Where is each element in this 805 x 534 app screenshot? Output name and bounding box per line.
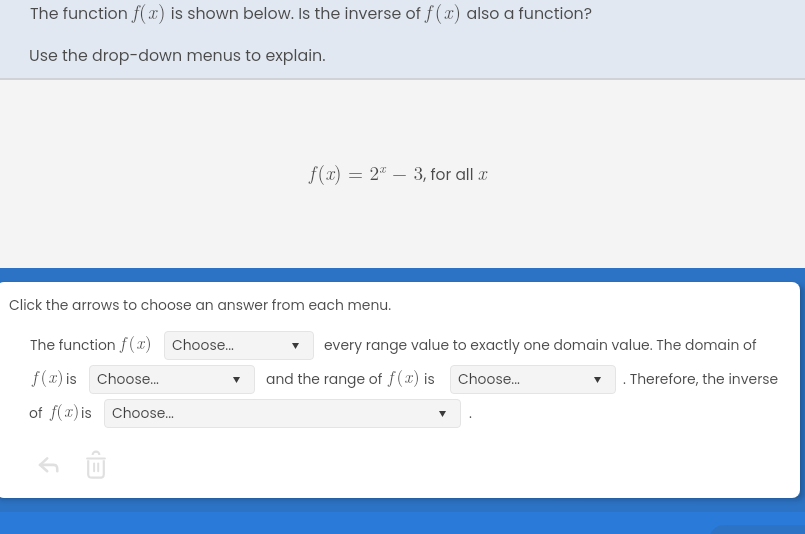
staticText: f(x): [50, 398, 81, 422]
staticText: Choose...: [172, 335, 235, 354]
staticText: is: [81, 403, 92, 422]
staticText: f (x) = 2x − 3, for all x: [309, 158, 487, 186]
staticText: is: [424, 369, 435, 388]
staticText: .: [469, 403, 472, 422]
staticText: Choose...: [112, 403, 175, 422]
staticText: Choose...: [458, 369, 521, 388]
staticText: Choose...: [97, 369, 160, 388]
staticText: is: [66, 369, 77, 388]
staticText: Use the drop-down menus to explain.: [29, 44, 326, 66]
staticText: The function: [30, 335, 116, 354]
staticText: f (x): [32, 364, 65, 388]
button[interactable]: Undo: [32, 450, 66, 480]
button[interactable]: Choose...: [89, 365, 255, 394]
staticText: of: [29, 403, 43, 422]
button[interactable]: Choose...: [164, 331, 314, 360]
button[interactable]: Choose...: [450, 365, 616, 394]
staticText: every range value to exactly one domain …: [324, 335, 757, 354]
staticText: The function f(x) is shown below. Is the…: [30, 0, 592, 24]
staticText: f (x): [120, 330, 153, 354]
button[interactable]: Submit: [709, 525, 805, 534]
staticText: f (x): [388, 364, 421, 388]
button[interactable]: Choose...: [104, 399, 461, 428]
staticText: . Therefore, the inverse: [623, 369, 779, 388]
button[interactable]: Delete: [84, 448, 114, 482]
staticText: and the range of: [266, 369, 383, 388]
staticText: Click the arrows to choose an answer fro…: [9, 295, 392, 314]
